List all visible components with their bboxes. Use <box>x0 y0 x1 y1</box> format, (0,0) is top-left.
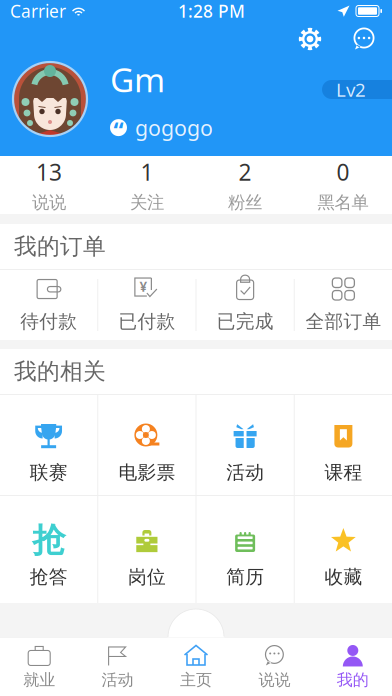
button[interactable]: Lv2 <box>322 80 392 99</box>
button[interactable]: 待付款 <box>0 270 97 340</box>
button[interactable]: 主页 <box>157 637 235 696</box>
staticText: 待付款 <box>20 310 77 333</box>
button[interactable]: 简历 <box>196 499 294 599</box>
staticText: 电影票 <box>118 461 175 484</box>
button[interactable]: 2 <box>196 156 294 214</box>
button[interactable]: 收藏 <box>295 499 392 599</box>
staticText: 收藏 <box>324 565 362 588</box>
staticText: Gm <box>110 57 165 101</box>
staticText: 关注 <box>130 192 164 213</box>
staticText: ¥ <box>139 278 147 295</box>
staticText: 我的相关 <box>14 358 106 385</box>
staticText: 就业 <box>23 670 55 690</box>
button[interactable]: 全部订单 <box>295 270 392 340</box>
staticText: 说说 <box>258 670 290 690</box>
button[interactable]: ¥ <box>98 270 195 340</box>
button[interactable]: 活动 <box>78 637 157 696</box>
button[interactable]: 课程 <box>295 395 392 495</box>
button[interactable]: 说说 <box>235 637 314 696</box>
button[interactable]: 联赛 <box>0 395 97 495</box>
staticText: 2 <box>238 157 251 187</box>
button[interactable]: Messages <box>347 22 381 56</box>
staticText: 1 <box>140 157 153 187</box>
staticText: Lv2 <box>336 77 366 102</box>
staticText: 黑名单 <box>317 192 368 213</box>
staticText: 13 <box>36 157 62 187</box>
staticText: 1:28 PM <box>178 0 245 22</box>
button[interactable]: 就业 <box>0 637 78 696</box>
staticText: 粉丝 <box>228 192 262 213</box>
staticText: 说说 <box>32 192 66 213</box>
button[interactable]: 我的 <box>314 637 392 696</box>
button[interactable]: 活动 <box>196 395 294 495</box>
button[interactable]: 电影票 <box>98 395 195 495</box>
button[interactable]: 抢 <box>0 499 97 599</box>
staticText: 活动 <box>102 670 134 690</box>
staticText: 抢 <box>32 520 65 561</box>
staticText: 活动 <box>226 461 264 484</box>
staticText: 抢答 <box>30 565 68 588</box>
button[interactable]: 1 <box>98 156 196 214</box>
button[interactable]: 13 <box>0 156 98 214</box>
staticText: “ <box>113 116 123 146</box>
staticText: 全部订单 <box>305 310 381 333</box>
staticText: 主页 <box>180 670 212 690</box>
staticText: 联赛 <box>30 461 68 484</box>
button[interactable]: Settings <box>293 22 327 56</box>
staticText: gogogo <box>135 113 213 142</box>
button[interactable]: 0 <box>294 156 392 214</box>
staticText: 我的 <box>337 670 369 690</box>
button[interactable]: 岗位 <box>98 499 195 599</box>
staticText: 已完成 <box>217 310 274 333</box>
staticText: 课程 <box>324 461 362 484</box>
staticText: Carrier <box>10 0 66 22</box>
staticText: 0 <box>336 157 349 187</box>
staticText: 我的订单 <box>14 233 106 260</box>
staticText: 已付款 <box>118 310 175 333</box>
button[interactable]: Profile photo <box>13 62 87 136</box>
staticText: 岗位 <box>128 565 166 588</box>
button[interactable]: 已完成 <box>196 270 294 340</box>
staticText: 简历 <box>226 565 264 588</box>
